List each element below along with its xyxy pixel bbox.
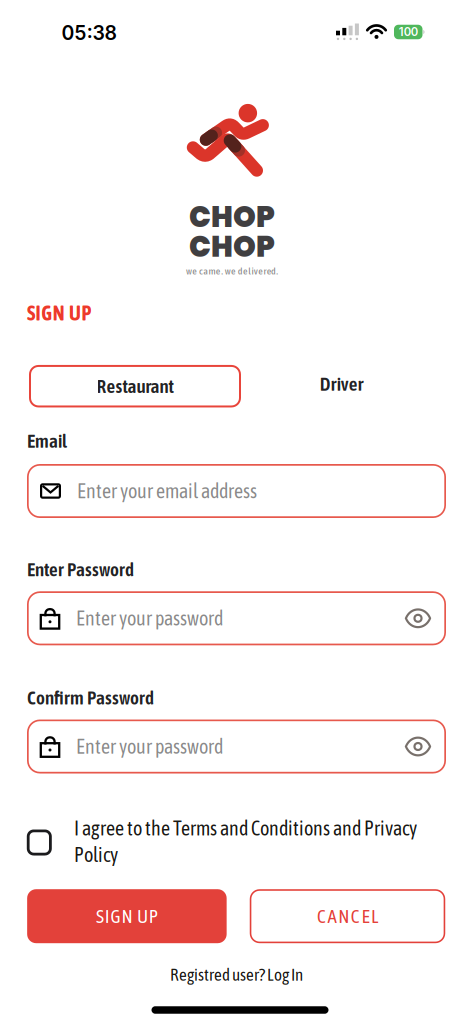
button[interactable]: Registred user? Log In (170, 965, 303, 984)
button[interactable]: Confirm Password (27, 719, 446, 773)
staticText: Enter your password (76, 735, 223, 758)
staticText: SIGN UP (96, 905, 158, 927)
staticText: Restaurant (96, 375, 173, 397)
staticText: Enter your email address (77, 479, 257, 502)
staticText: SIGN UP (27, 302, 92, 325)
button[interactable]: CANCEL (250, 889, 445, 943)
button[interactable]: Enter Password (27, 591, 446, 645)
staticText: Enter Password (27, 559, 134, 580)
staticText: 05:38 (61, 21, 116, 45)
staticText: Confirm Password (27, 687, 154, 709)
staticText: 100 (399, 25, 418, 39)
button[interactable]: Show password (405, 608, 431, 628)
staticText: CANCEL (317, 905, 378, 927)
staticText: Enter your password (76, 607, 223, 630)
button[interactable]: Restaurant (29, 365, 241, 407)
button[interactable]: I agree to the Terms and Conditions and … (74, 817, 446, 866)
button[interactable]: Show password (405, 736, 431, 756)
button[interactable]: SIGN UP (27, 889, 227, 943)
staticText: we came. we delivered. (186, 265, 278, 277)
button[interactable]: Agree to terms (27, 829, 52, 855)
staticText: CHOP (189, 226, 275, 267)
staticText: Registred user? Log In (170, 965, 303, 984)
staticText: I agree to the Terms and Conditions and … (74, 817, 417, 866)
staticText: Email (27, 430, 67, 452)
button[interactable]: Email (27, 464, 446, 518)
button[interactable]: Driver (239, 363, 444, 405)
staticText: CHOP (189, 196, 275, 237)
staticText: Driver (320, 373, 364, 395)
